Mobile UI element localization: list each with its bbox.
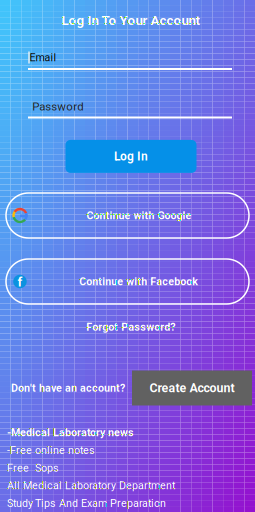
staticText: Study Tips And Exam Preparation bbox=[7, 497, 166, 510]
button[interactable]: Forgot Password? bbox=[81, 317, 180, 337]
staticText: Free Sops bbox=[7, 462, 59, 474]
staticText: Email bbox=[29, 51, 56, 64]
staticText: Create Account bbox=[149, 381, 234, 395]
staticText: Password bbox=[32, 100, 83, 113]
staticText: Continue with Google bbox=[86, 209, 191, 222]
staticText: -Medical Laboratory news bbox=[7, 426, 133, 439]
staticText: -Free online notes bbox=[7, 444, 95, 456]
button[interactable]: f bbox=[6, 259, 249, 304]
button[interactable]: Continue with Google bbox=[6, 193, 249, 238]
button[interactable]: Log In bbox=[65, 140, 196, 173]
staticText: Continue with Facebook bbox=[79, 275, 198, 288]
staticText: f bbox=[17, 274, 22, 290]
staticText: Log In bbox=[114, 149, 148, 163]
staticText: Log In To Your Account bbox=[61, 13, 200, 28]
staticText: All Medical Laboratory Department bbox=[7, 479, 175, 492]
staticText: Forgot Password? bbox=[86, 321, 175, 333]
button[interactable]: Create Account bbox=[132, 370, 252, 405]
staticText: Don't have an account? bbox=[11, 382, 125, 394]
